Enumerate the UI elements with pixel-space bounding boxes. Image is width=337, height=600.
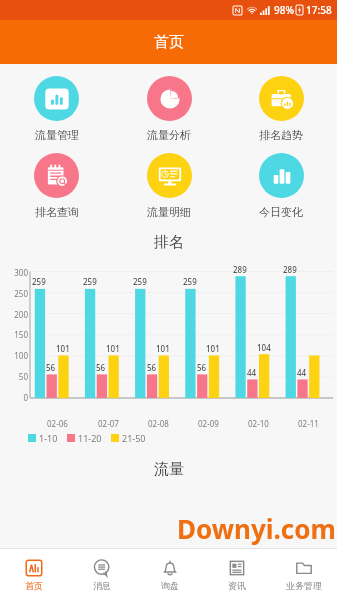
staticText: 流量管理: [35, 128, 79, 142]
staticText: 101: [56, 343, 70, 354]
staticText: 询盘: [161, 580, 179, 591]
staticText: 排名趋势: [259, 128, 303, 142]
button[interactable]: 流量分析: [113, 75, 225, 143]
staticText: 259: [83, 276, 97, 287]
staticText: 259: [183, 276, 197, 287]
staticText: 02-07: [98, 418, 119, 429]
staticText: 259: [133, 276, 147, 287]
button[interactable]: 消息: [68, 549, 136, 600]
staticText: 259: [32, 276, 46, 287]
button[interactable]: 排名趋势: [225, 75, 337, 143]
staticText: 1-10: [39, 432, 58, 444]
staticText: Downyi.com: [177, 511, 336, 546]
staticText: 56: [197, 362, 207, 373]
staticText: 56: [147, 362, 157, 373]
staticText: 02-11: [298, 418, 319, 429]
staticText: 17:58: [306, 3, 332, 17]
staticText: 首页: [154, 33, 184, 52]
staticText: 资讯: [228, 580, 246, 591]
staticText: 排名查询: [35, 205, 79, 219]
staticText: 250: [14, 288, 28, 299]
staticText: 02-08: [148, 418, 169, 429]
staticText: 流量: [154, 460, 184, 479]
staticText: 289: [233, 264, 247, 275]
staticText: 消息: [93, 580, 111, 591]
staticText: 02-09: [198, 418, 219, 429]
staticText: 流量分析: [147, 128, 191, 142]
staticText: 0: [23, 392, 28, 403]
button[interactable]: 今日变化: [225, 152, 337, 220]
staticText: 101: [206, 343, 220, 354]
button[interactable]: 排名查询: [0, 152, 113, 220]
staticText: 11-20: [78, 432, 102, 444]
staticText: 02-10: [248, 418, 269, 429]
staticText: 56: [46, 362, 56, 373]
staticText: 50: [18, 371, 28, 382]
staticText: 今日变化: [259, 205, 303, 219]
staticText: 104: [257, 342, 271, 353]
staticText: 300: [14, 267, 28, 278]
staticText: 98%: [274, 3, 294, 17]
staticText: 289: [283, 264, 297, 275]
staticText: 业务管理: [286, 580, 322, 591]
staticText: 排名: [154, 233, 184, 252]
staticText: 44: [297, 367, 307, 378]
staticText: 101: [156, 343, 170, 354]
staticText: 56: [96, 362, 106, 373]
button[interactable]: 资讯: [203, 549, 270, 600]
staticText: 44: [247, 367, 257, 378]
staticText: 02-06: [47, 418, 68, 429]
button[interactable]: 首页: [0, 549, 68, 600]
staticText: 流量明细: [147, 205, 191, 219]
button[interactable]: 流量管理: [0, 75, 113, 143]
staticText: 21-50: [122, 432, 146, 444]
staticText: 100: [14, 350, 28, 361]
staticText: 首页: [25, 580, 43, 591]
button[interactable]: 业务管理: [270, 549, 337, 600]
staticText: 200: [14, 309, 28, 320]
button[interactable]: 询盘: [136, 549, 203, 600]
button[interactable]: 流量明细: [113, 152, 225, 220]
staticText: 150: [14, 329, 28, 340]
staticText: 101: [106, 343, 120, 354]
